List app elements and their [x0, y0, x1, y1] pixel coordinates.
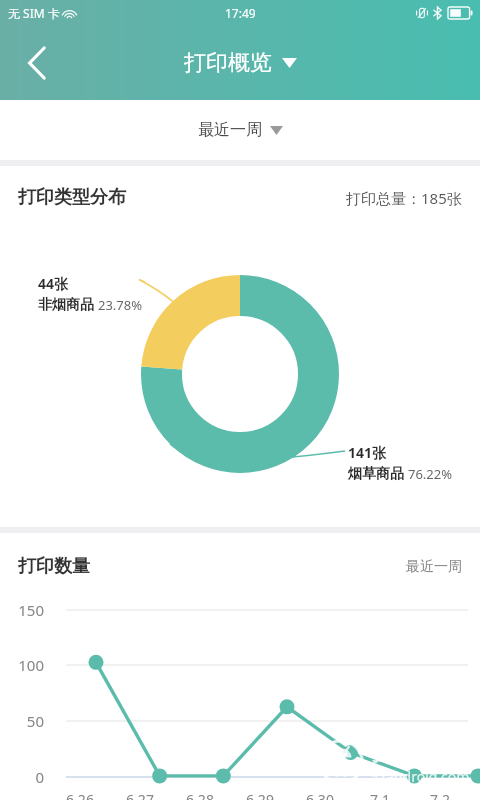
staticText: 44张: [38, 274, 69, 293]
button[interactable]: 最近一周: [198, 120, 283, 140]
staticText: 6.30: [290, 790, 350, 800]
staticText: 打印类型分布: [18, 186, 126, 209]
staticText: 6.28: [170, 790, 230, 800]
button[interactable]: Back: [10, 35, 66, 91]
button[interactable]: 打印概览: [184, 49, 297, 77]
staticText: 50: [0, 711, 44, 731]
staticText: 100: [0, 655, 44, 675]
staticText: 非烟商品: [38, 296, 94, 314]
staticText: 最近一周: [198, 120, 262, 140]
staticText: 0: [0, 767, 44, 787]
staticText: 打印总量：185张: [346, 188, 462, 208]
staticText: 7.2: [410, 790, 470, 800]
staticText: 6.27: [110, 790, 170, 800]
staticText: 最近一周: [406, 558, 462, 576]
staticText: 17:49: [225, 5, 256, 21]
staticText: 无 SIM 卡: [8, 5, 60, 21]
staticText: 76.22%: [408, 465, 453, 483]
staticText: 烟草商品: [348, 465, 404, 483]
staticText: 150: [0, 600, 44, 620]
staticText: 6.29: [230, 790, 290, 800]
staticText: 52android.com: [370, 767, 470, 786]
staticText: 141张: [348, 443, 387, 462]
staticText: 7.1: [350, 790, 410, 800]
staticText: 6.26: [50, 790, 110, 800]
staticText: 23.78%: [98, 296, 143, 314]
staticText: 打印数量: [18, 555, 90, 578]
staticText: 我爱安卓: [370, 738, 462, 767]
staticText: 打印概览: [184, 49, 272, 77]
